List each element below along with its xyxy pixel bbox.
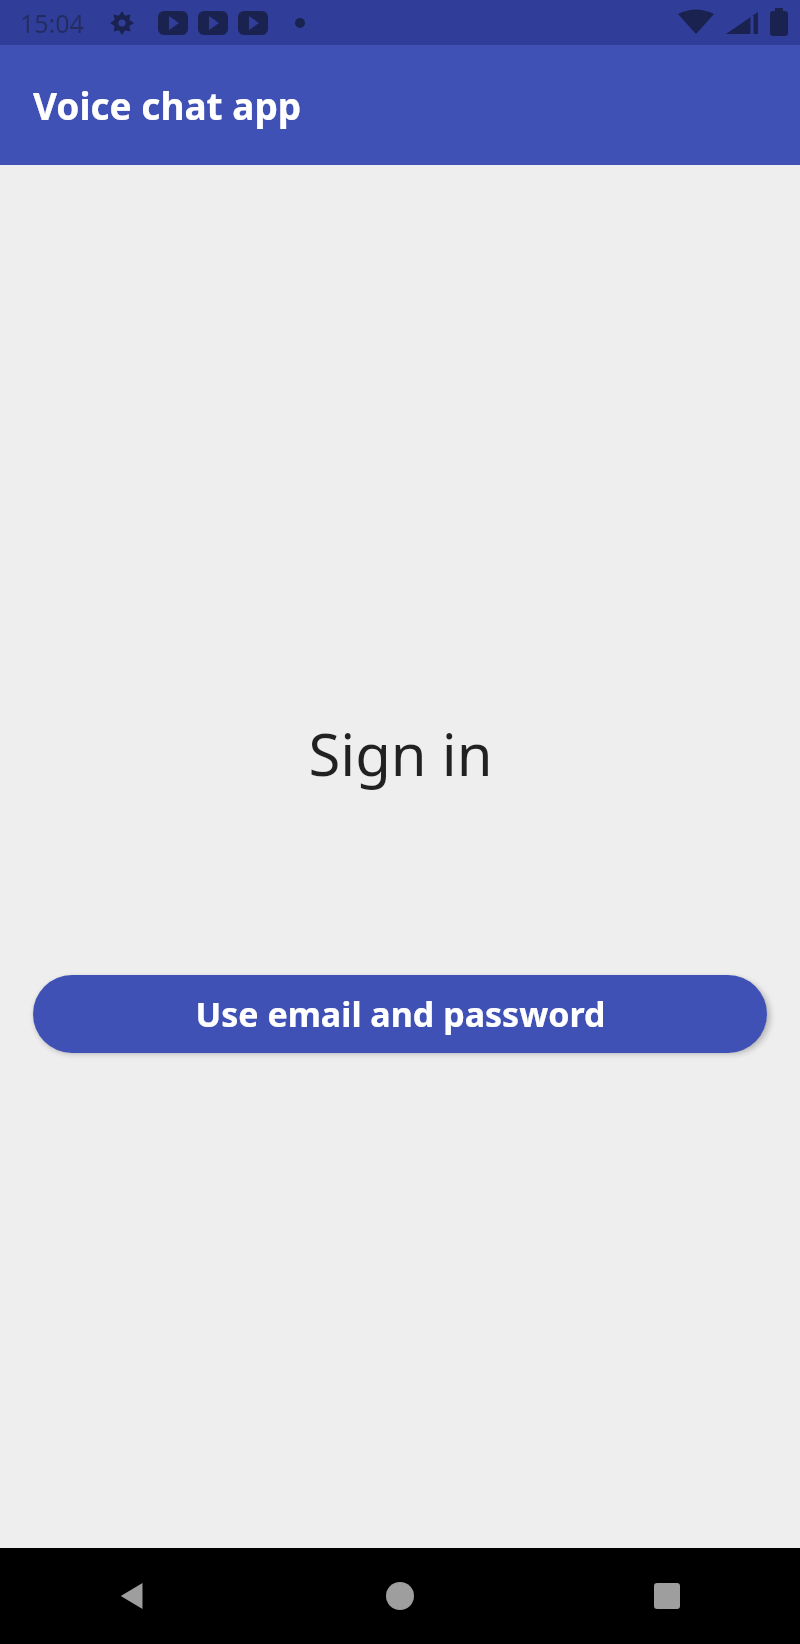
- staticText: Voice chat app: [33, 80, 302, 130]
- staticText: Use email and password: [195, 991, 606, 1037]
- staticText: 15:04: [20, 6, 84, 40]
- button[interactable]: Recent apps: [533, 1548, 800, 1644]
- staticText: Sign in: [308, 714, 493, 793]
- button[interactable]: Back: [0, 1548, 266, 1644]
- button[interactable]: Home: [266, 1548, 533, 1644]
- button[interactable]: Use email and password: [33, 975, 767, 1053]
